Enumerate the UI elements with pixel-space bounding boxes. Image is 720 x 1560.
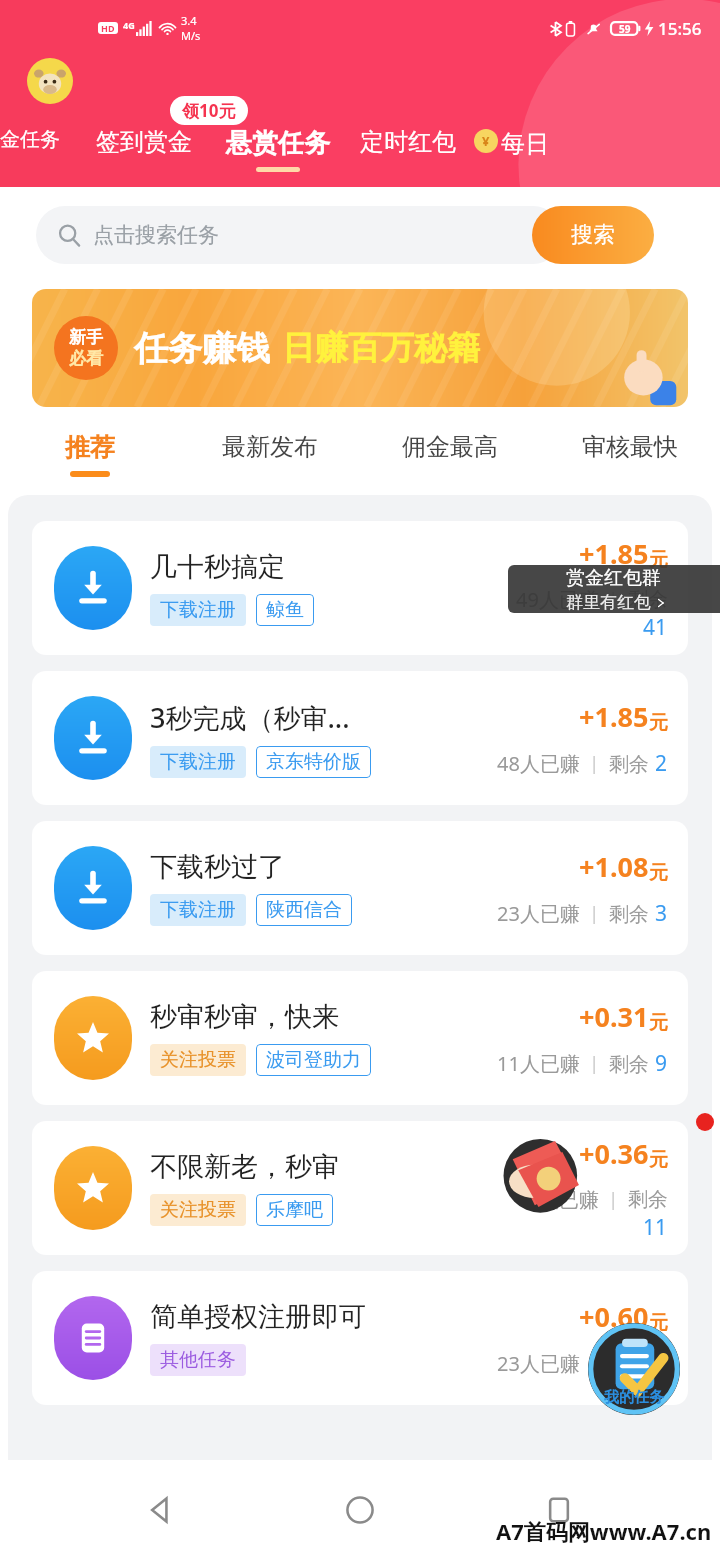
button[interactable]: 不限新老，秒审: [32, 1121, 688, 1255]
staticText: 49人已赚: [516, 586, 599, 613]
staticText: 15:56: [658, 17, 702, 40]
button[interactable]: 赏金红包群: [508, 565, 720, 613]
staticText: |: [599, 587, 628, 612]
button[interactable]: 定时红包: [360, 115, 456, 164]
staticText: 元: [649, 861, 668, 885]
staticText: |: [580, 1351, 609, 1376]
staticText: 我的任务: [604, 1388, 664, 1407]
staticText: 点击搜索任务: [93, 222, 219, 248]
button[interactable]: 签到赏金: [96, 115, 192, 164]
button[interactable]: 我的任务: [588, 1323, 680, 1415]
staticText: 任务赚钱: [134, 327, 270, 370]
staticText: 23人已赚: [497, 1350, 580, 1377]
staticText: 下载秒过了: [150, 850, 285, 884]
staticText: 剩余: [609, 900, 655, 927]
staticText: 元: [649, 1011, 668, 1035]
staticText: 剩余: [609, 750, 655, 777]
staticText: 59: [619, 22, 631, 36]
staticText: 元: [649, 1148, 668, 1172]
staticText: 审核最快: [582, 432, 678, 462]
staticText: 几十秒搞定: [150, 550, 285, 584]
button[interactable]: 点击搜索任务: [36, 206, 562, 264]
staticText: A7首码网www.A7.cn: [496, 1516, 712, 1546]
button[interactable]: Home: [322, 1472, 398, 1548]
staticText: 剩余: [609, 1050, 655, 1077]
button[interactable]: 搜索: [532, 206, 654, 264]
staticText: 下载注册: [160, 750, 236, 774]
button[interactable]: Back: [123, 1472, 199, 1548]
staticText: 佣金最高: [402, 432, 498, 462]
staticText: HD: [101, 22, 115, 34]
staticText: 3.4: [181, 13, 197, 28]
staticText: 剩余: [628, 587, 668, 612]
button[interactable]: 金任务: [0, 115, 60, 159]
staticText: 23人已赚: [497, 900, 580, 927]
staticText: 乐摩吧: [266, 1198, 323, 1222]
staticText: 9: [655, 1049, 668, 1078]
staticText: 元: [649, 711, 668, 735]
staticText: ¥: [482, 132, 490, 150]
button[interactable]: 下载秒过了: [32, 821, 688, 955]
staticText: |: [580, 1051, 609, 1076]
staticText: 领10元: [182, 99, 236, 122]
staticText: 3: [655, 899, 668, 928]
button[interactable]: 佣金最高: [360, 413, 540, 495]
staticText: |: [599, 1187, 628, 1212]
button[interactable]: 秒审秒审，快来: [32, 971, 688, 1105]
staticText: +0.31: [579, 998, 649, 1035]
button[interactable]: 简单授权注册即可: [32, 1271, 688, 1405]
staticText: 6: [655, 1349, 668, 1378]
staticText: 4G: [123, 19, 135, 31]
staticText: +1.85: [579, 698, 649, 735]
staticText: 京东特价版: [266, 750, 361, 774]
staticText: 签到赏金: [96, 127, 192, 157]
staticText: 11: [643, 1213, 668, 1242]
staticText: 定时红包: [360, 127, 456, 157]
button[interactable]: 最新发布: [180, 413, 360, 495]
staticText: 鲸鱼: [266, 598, 304, 622]
staticText: 陕西信合: [266, 898, 342, 922]
staticText: +1.08: [579, 848, 649, 885]
staticText: 关注投票: [160, 1198, 236, 1222]
staticText: 下载注册: [160, 898, 236, 922]
staticText: 下载注册: [160, 598, 236, 622]
staticText: 元: [649, 548, 668, 572]
staticText: 41: [643, 613, 668, 642]
staticText: +1.85: [579, 535, 649, 572]
staticText: 其他任务: [160, 1348, 236, 1372]
staticText: |: [580, 751, 609, 776]
staticText: 波司登助力: [266, 1048, 361, 1072]
button[interactable]: 审核最快: [540, 413, 720, 495]
button[interactable]: Recents: [521, 1472, 597, 1548]
button[interactable]: Profile: [27, 58, 73, 104]
staticText: 必看: [69, 348, 103, 369]
staticText: 新手: [69, 327, 103, 348]
staticText: 群里有红包: [566, 592, 651, 613]
staticText: 最新发布: [222, 432, 318, 462]
button[interactable]: 新手: [32, 289, 688, 407]
staticText: 剩余: [609, 1350, 655, 1377]
staticText: +0.60: [579, 1298, 649, 1335]
staticText: 2: [655, 749, 668, 778]
button[interactable]: 推荐: [0, 413, 180, 495]
staticText: 关注投票: [160, 1048, 236, 1072]
staticText: 3秒完成（秒审...: [150, 699, 350, 736]
button[interactable]: 领10元: [170, 96, 248, 125]
button[interactable]: 3秒完成（秒审...: [32, 671, 688, 805]
staticText: 赏金红包群: [566, 566, 661, 590]
staticText: 元: [649, 1311, 668, 1335]
button[interactable]: 悬赏任务: [226, 115, 330, 172]
staticText: 48人已赚: [497, 750, 580, 777]
staticText: +0.36: [579, 1135, 649, 1172]
button[interactable]: 几十秒搞定: [32, 521, 688, 655]
staticText: 悬赏任务: [226, 127, 330, 160]
staticText: 每日: [501, 129, 549, 159]
staticText: 金任务: [0, 127, 60, 152]
staticText: |: [580, 901, 609, 926]
staticText: 11人已赚: [497, 1050, 580, 1077]
staticText: 14人已赚: [516, 1186, 599, 1213]
staticText: 不限新老，秒审: [150, 1150, 339, 1184]
staticText: 推荐: [65, 432, 115, 463]
staticText: 日赚百万秘籍: [282, 327, 480, 369]
staticText: 秒审秒审，快来: [150, 1000, 339, 1034]
